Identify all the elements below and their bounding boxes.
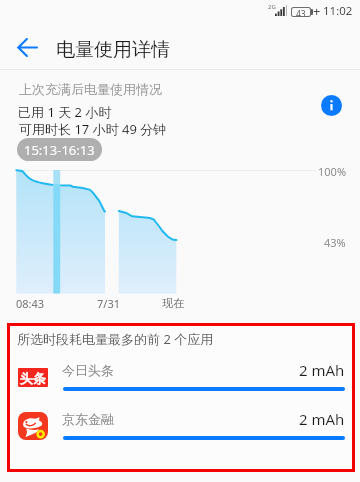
staticText: +	[313, 2, 321, 20]
staticText: 2 mAh	[299, 409, 345, 429]
staticText: 2G	[268, 3, 276, 11]
staticText: 京东金融	[62, 411, 114, 427]
button[interactable]: Info	[318, 92, 344, 118]
button[interactable]: 头条	[10, 356, 352, 404]
button[interactable]: 京东金融	[10, 405, 352, 453]
staticText: 15:13-16:13	[24, 141, 95, 159]
staticText: 100%	[318, 164, 347, 179]
staticText: 上次充满后电量使用情况	[19, 81, 162, 97]
staticText: 头条	[20, 370, 46, 386]
staticText: 所选时段耗电量最多的前 2 个应用	[17, 330, 214, 348]
staticText: 43	[296, 8, 306, 16]
staticText: 08:43	[16, 296, 45, 311]
staticText: 今日头条	[62, 362, 114, 378]
staticText: 现在	[162, 296, 184, 310]
staticText: 7/31	[97, 296, 120, 311]
staticText: 43%	[324, 235, 346, 250]
staticText: 可用时长 17 小时 49 分钟	[19, 120, 167, 138]
staticText: 11:02	[323, 3, 353, 19]
staticText: 2 mAh	[299, 360, 345, 380]
staticText: 电量使用详情	[56, 38, 170, 62]
button[interactable]: Back	[11, 31, 43, 63]
staticText: 已用 1 天 2 小时	[18, 103, 112, 121]
